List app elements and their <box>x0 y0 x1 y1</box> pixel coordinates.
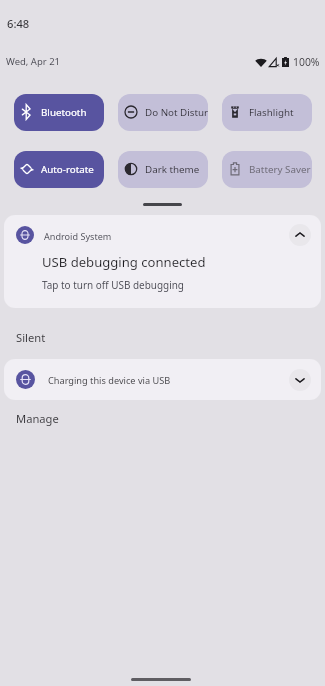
button[interactable]: Drag handle <box>143 203 182 206</box>
button[interactable]: Collapse notification <box>289 224 311 246</box>
staticText: Tap to turn off USB debugging <box>42 278 184 292</box>
staticText: Do Not Disturb <box>145 106 208 119</box>
button[interactable]: Do Not Disturb <box>118 94 208 131</box>
staticText: Silent <box>16 330 46 345</box>
button[interactable]: Android System <box>4 215 321 308</box>
staticText: Android System <box>44 230 112 242</box>
staticText: Battery Saver <box>249 163 311 176</box>
staticText: Auto-rotate <box>41 163 94 176</box>
staticText: 100% <box>293 55 320 69</box>
button[interactable]: Battery Saver <box>222 151 312 188</box>
staticText: Wed, Apr 21 <box>6 55 61 68</box>
button[interactable]: Bluetooth <box>14 94 104 131</box>
staticText: USB debugging connected <box>42 253 206 271</box>
staticText: Bluetooth <box>41 106 87 119</box>
button[interactable]: Auto-rotate <box>14 151 104 188</box>
staticText: 6:48 <box>7 16 30 31</box>
staticText: Dark theme <box>145 163 200 176</box>
button[interactable]: Flashlight <box>222 94 312 131</box>
button[interactable]: Charging this device via USB <box>4 359 321 400</box>
button[interactable]: Manage <box>16 411 59 426</box>
button[interactable]: Dark theme <box>118 151 208 188</box>
staticText: Charging this device via USB <box>48 374 171 387</box>
button[interactable]: Expand notification <box>289 369 311 391</box>
staticText: Flashlight <box>249 106 294 119</box>
